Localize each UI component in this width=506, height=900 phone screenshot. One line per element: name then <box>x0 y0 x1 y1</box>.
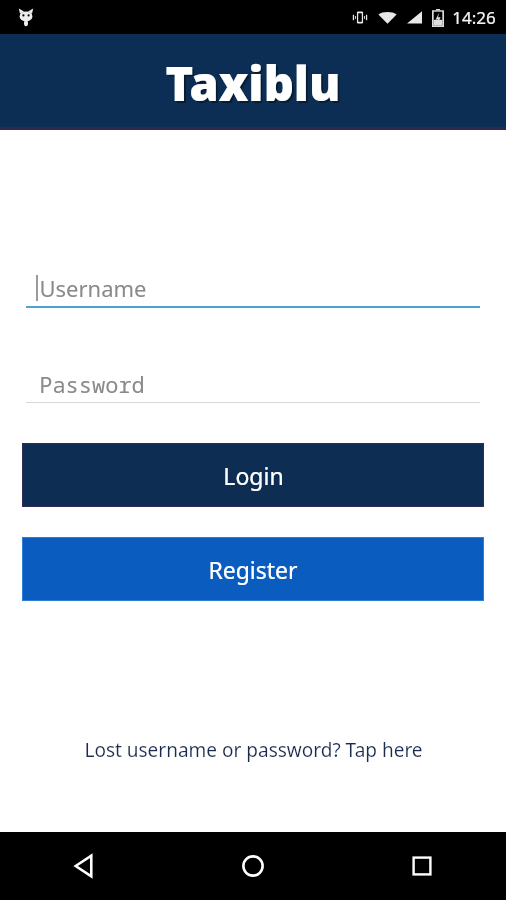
button[interactable]: Register <box>23 538 483 600</box>
button[interactable]: Login <box>23 444 483 506</box>
staticText: Login <box>223 460 284 491</box>
button[interactable]: Back <box>0 832 168 900</box>
staticText: Password <box>39 369 145 399</box>
staticText: Taxiblu <box>167 53 343 117</box>
staticText: Taxiblu <box>165 51 341 115</box>
button[interactable]: Recent apps <box>337 832 506 900</box>
button[interactable]: Lost username or password? Tap here <box>0 731 506 769</box>
button[interactable]: Password <box>26 366 480 403</box>
staticText: 14:26 <box>452 6 496 29</box>
staticText: Username <box>39 273 147 303</box>
staticText: Lost username or password? Tap here <box>84 737 423 763</box>
staticText: Register <box>208 554 298 585</box>
button[interactable]: Home <box>168 832 337 900</box>
button[interactable]: Username <box>26 270 480 308</box>
